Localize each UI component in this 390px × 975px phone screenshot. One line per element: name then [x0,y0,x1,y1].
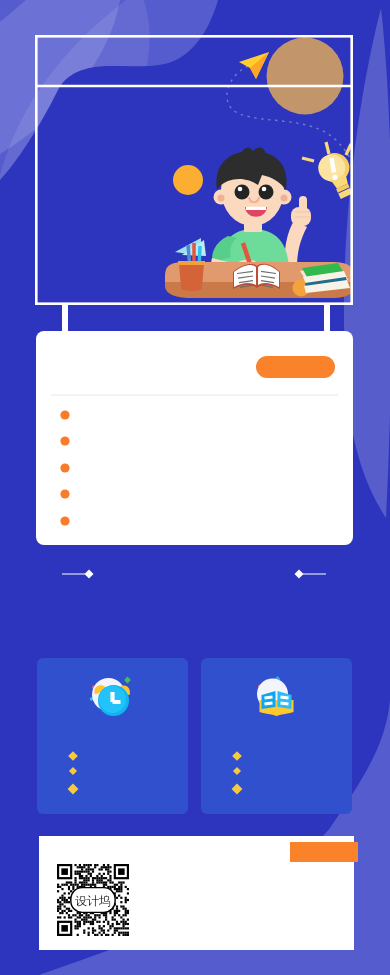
button[interactable] [39,836,354,950]
button[interactable]: Reading [201,658,352,814]
button[interactable]: Action [36,331,353,545]
staticText: 设计坞 [75,893,111,908]
button[interactable]: Action [256,356,335,378]
button[interactable]: Schedule [37,658,188,814]
